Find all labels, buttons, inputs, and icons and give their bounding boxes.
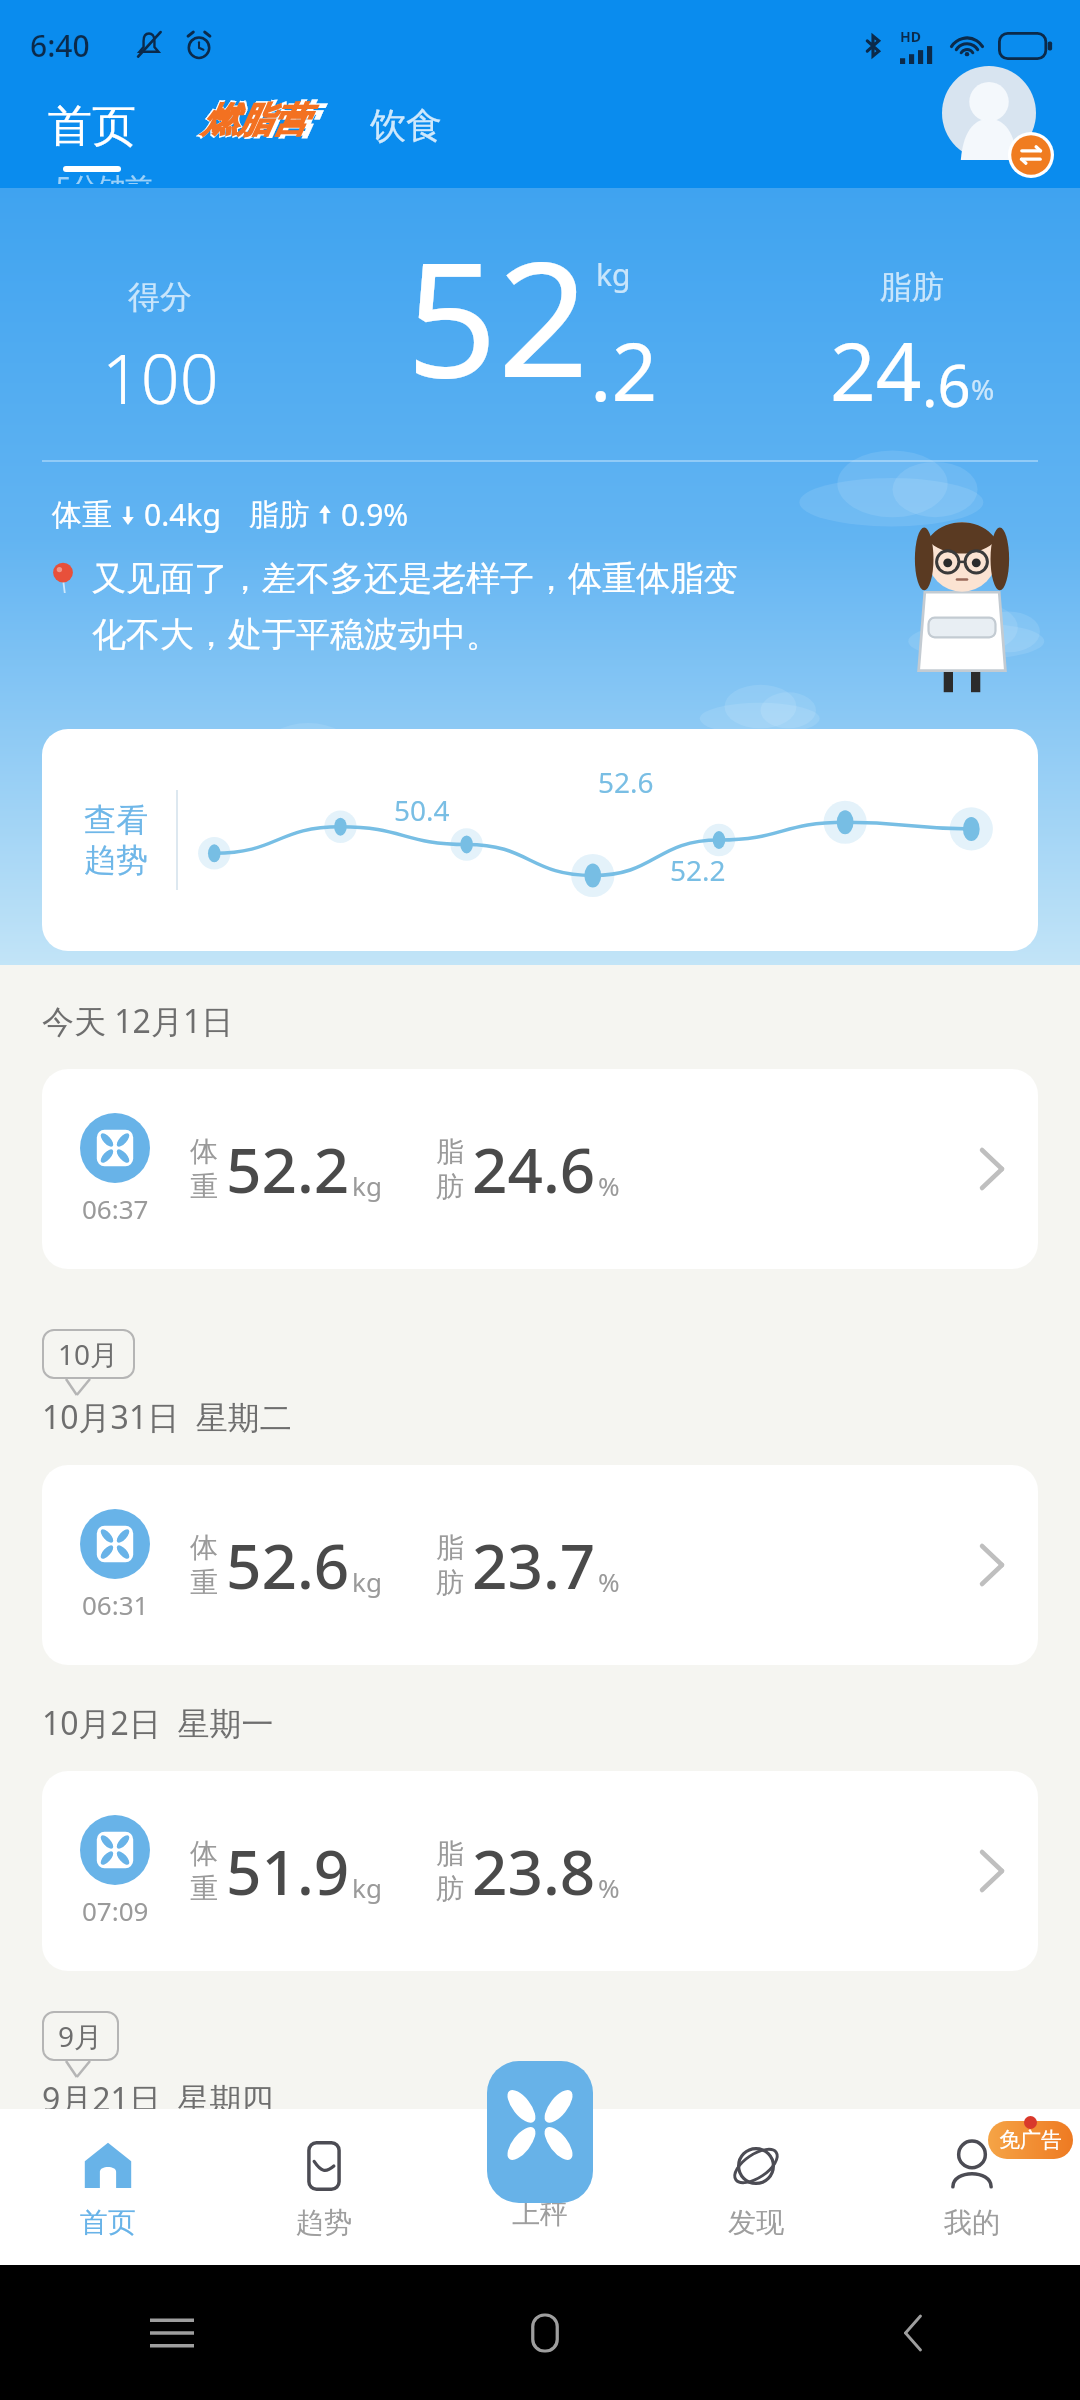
staticText: 得分: [128, 277, 192, 317]
staticText: 重: [190, 1871, 218, 1906]
staticText: 9月: [58, 2017, 103, 2055]
staticText: 52.2: [226, 1127, 350, 1211]
staticText: 脂: [436, 1836, 464, 1871]
staticText: 0.4kg: [144, 494, 221, 535]
staticText: 首页: [80, 2205, 136, 2240]
staticText: 我的: [944, 2205, 1000, 2240]
staticText: %: [598, 1168, 620, 1203]
staticText: 肪: [436, 1565, 464, 1600]
button[interactable]: 发现: [648, 2109, 864, 2265]
button[interactable]: 06:31: [42, 1465, 1038, 1665]
staticText: 免广告: [999, 2127, 1062, 2153]
button[interactable]: 首页: [44, 99, 140, 172]
staticText: 10月: [58, 1335, 119, 1373]
staticText: kg: [352, 1168, 382, 1203]
staticText: 0.9%: [341, 494, 409, 535]
staticText: 6:40: [30, 25, 90, 66]
staticText: 9月21日 星期四: [42, 2077, 274, 2109]
staticText: 脂: [436, 1134, 464, 1169]
staticText: 脂肪: [880, 267, 944, 307]
staticText: %: [598, 1564, 620, 1599]
staticText: 24: [830, 315, 922, 424]
staticText: %: [598, 1870, 620, 1905]
staticText: 10月2日 星期一: [42, 1701, 274, 1745]
staticText: 06:31: [82, 1587, 149, 1622]
button[interactable]: 07:09: [42, 1771, 1038, 1971]
button[interactable]: Back: [896, 2308, 930, 2358]
staticText: 发现: [728, 2205, 784, 2240]
button[interactable]: 首页: [0, 2109, 216, 2265]
staticText: 今天 12月1日: [42, 999, 234, 1043]
staticText: 脂肪: [249, 496, 309, 534]
staticText: HD: [900, 27, 921, 46]
staticText: 查看: [84, 800, 148, 840]
staticText: 肪: [436, 1169, 464, 1204]
staticText: 体: [190, 1836, 218, 1871]
staticText: 重: [190, 1565, 218, 1600]
staticText: .2: [590, 315, 658, 424]
button[interactable]: 上秤: [432, 2109, 648, 2265]
button[interactable]: 燃脂营: [196, 90, 318, 172]
staticText: 体: [190, 1530, 218, 1565]
staticText: 体重: [52, 496, 112, 534]
button[interactable]: 饮食: [366, 103, 446, 172]
staticText: 06:37: [82, 1191, 149, 1226]
staticText: 100: [102, 331, 219, 424]
staticText: 燃脂营: [202, 98, 307, 142]
button[interactable]: 我的: [864, 2109, 1080, 2265]
staticText: 5分钟前: [56, 168, 153, 184]
staticText: 51.9: [226, 1829, 350, 1913]
staticText: 上秤: [512, 2196, 568, 2231]
staticText: %: [971, 370, 995, 408]
staticText: 又见面了，差不多还是老样子，体重体脂变 化不大，处于平稳波动中。: [92, 557, 792, 656]
staticText: 重: [190, 1169, 218, 1204]
staticText: 趋势: [84, 840, 148, 880]
staticText: kg: [352, 1870, 382, 1905]
staticText: 50.4: [394, 791, 450, 829]
staticText: 52.6: [598, 763, 654, 801]
staticText: 52.6: [226, 1523, 350, 1607]
button[interactable]: 趋势: [216, 2109, 432, 2265]
staticText: kg: [352, 1564, 382, 1599]
button[interactable]: Profile and switch user: [942, 66, 1054, 178]
staticText: 24.6: [472, 1127, 596, 1211]
staticText: .6: [922, 345, 971, 424]
staticText: 23.8: [472, 1829, 596, 1913]
staticText: 脂: [436, 1530, 464, 1565]
staticText: 饮食: [370, 103, 442, 148]
staticText: 趋势: [296, 2205, 352, 2240]
staticText: 燃脂营: [200, 96, 314, 144]
button[interactable]: 查看: [42, 729, 1038, 951]
staticText: 52: [406, 206, 590, 424]
button[interactable]: Home: [527, 2308, 563, 2358]
button[interactable]: 上秤 Weigh in: [487, 2061, 593, 2203]
button[interactable]: Recent apps: [150, 2313, 194, 2353]
button[interactable]: 得分: [42, 277, 278, 424]
staticText: kg: [596, 254, 631, 295]
staticText: 52.2: [670, 851, 726, 889]
staticText: 首页: [48, 99, 136, 154]
staticText: 07:09: [82, 1893, 149, 1928]
button[interactable]: 06:37: [42, 1069, 1038, 1269]
staticText: 体: [190, 1134, 218, 1169]
button[interactable]: 脂肪: [786, 267, 1038, 424]
staticText: 23.7: [472, 1523, 596, 1607]
staticText: 10月31日 星期二: [42, 1395, 292, 1439]
staticText: 肪: [436, 1871, 464, 1906]
